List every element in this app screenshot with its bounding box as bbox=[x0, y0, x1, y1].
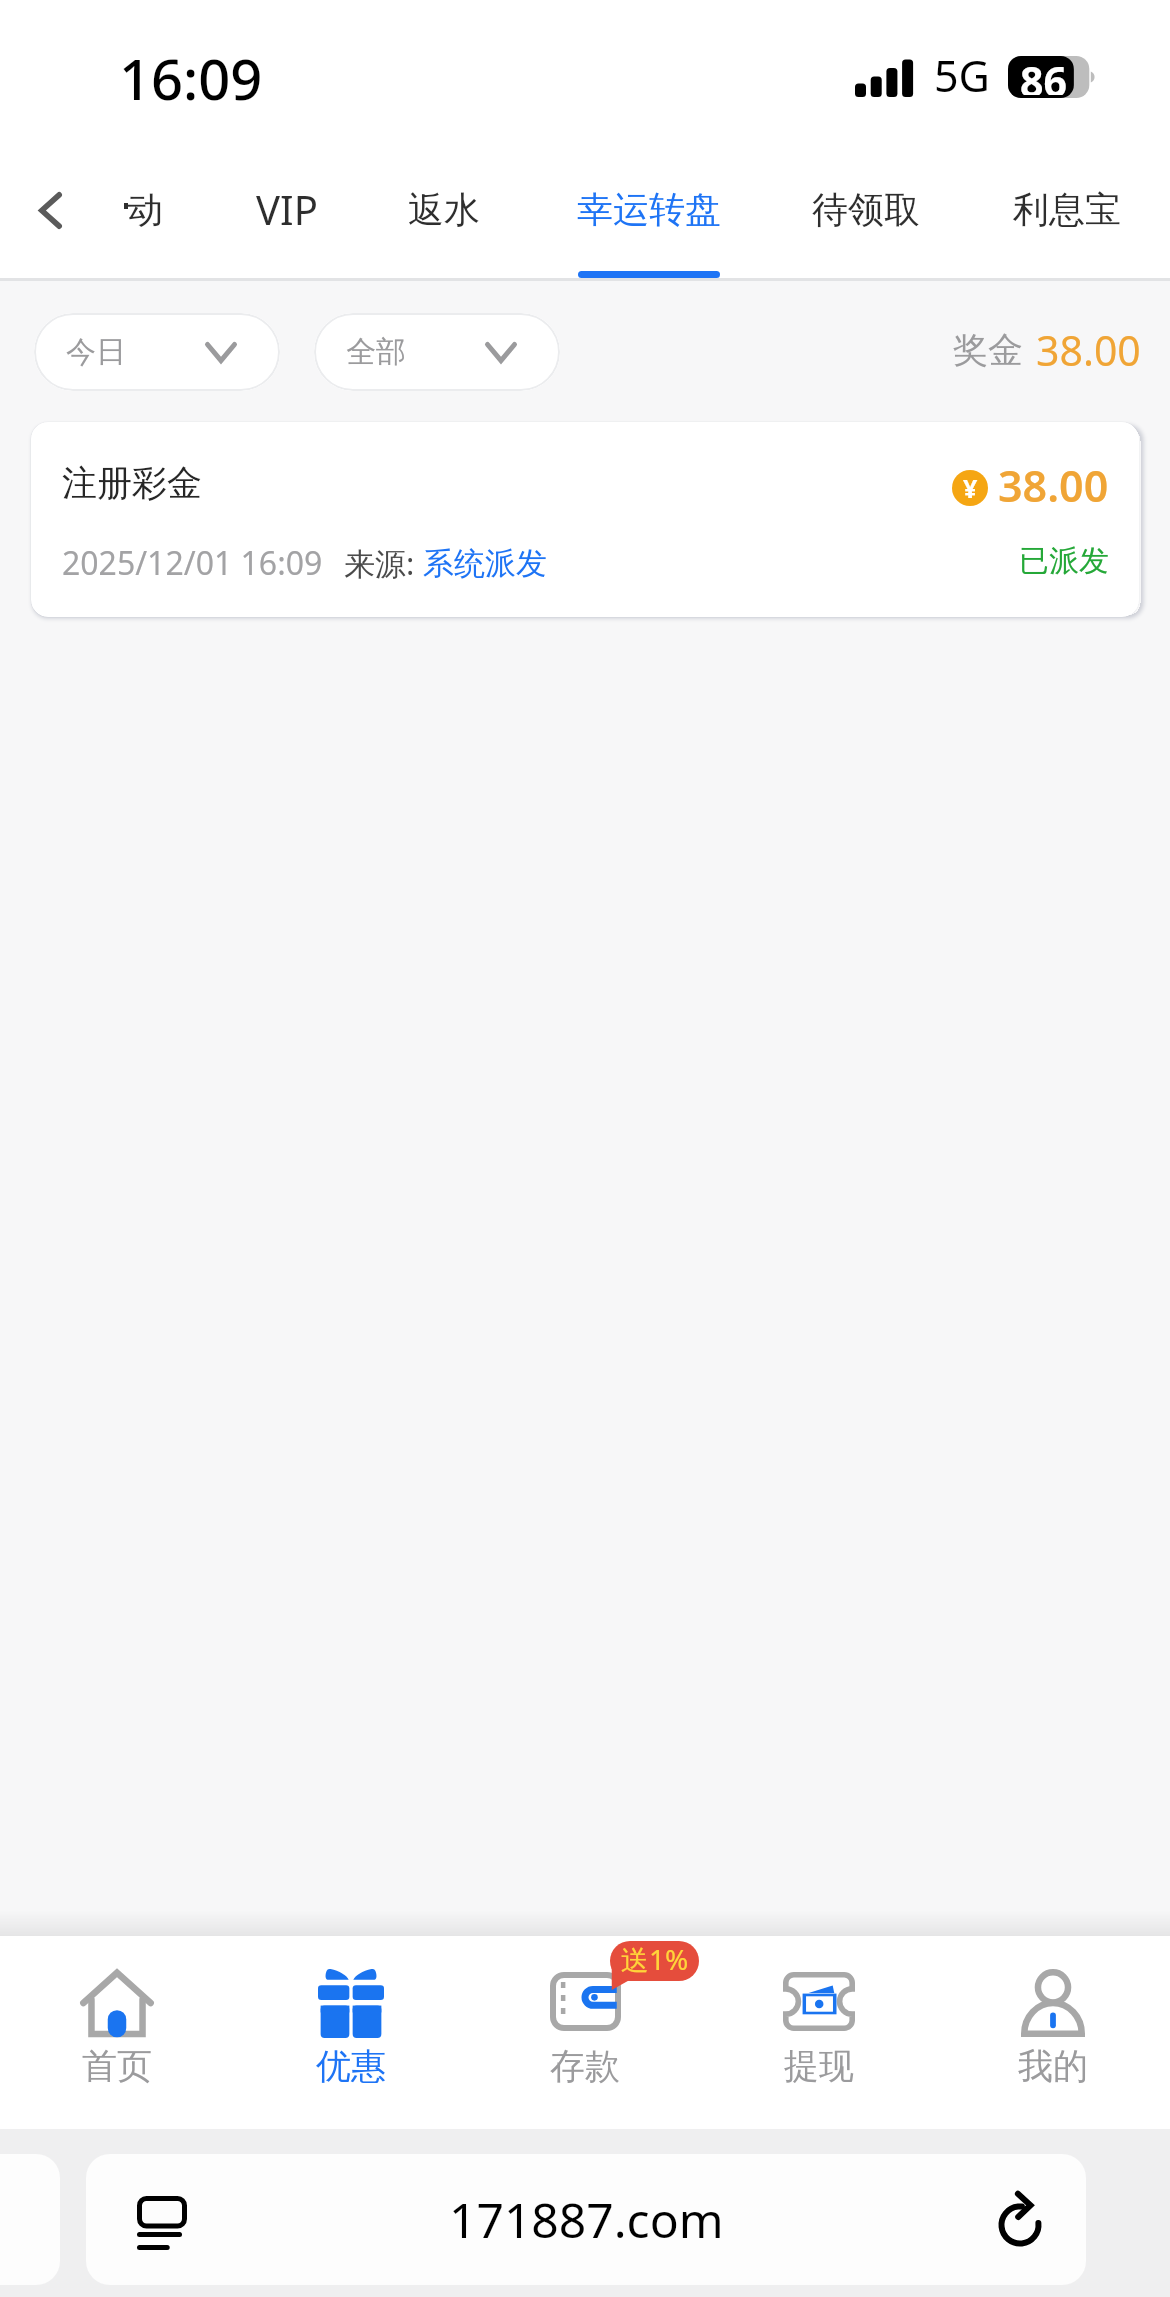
button[interactable]: 今日 bbox=[34, 313, 280, 391]
staticText: ¥ bbox=[963, 471, 978, 505]
staticText: 38.00 bbox=[1036, 322, 1141, 378]
button[interactable]: 待领取 bbox=[807, 150, 925, 268]
staticText: 奖金 bbox=[953, 328, 1023, 372]
button[interactable]: Reader view bbox=[86, 2154, 1086, 2285]
staticText: 今日 bbox=[66, 333, 126, 371]
button[interactable]: 动 bbox=[116, 150, 174, 268]
button[interactable]: Reader view bbox=[117, 2176, 202, 2261]
staticText: 全部 bbox=[346, 333, 406, 371]
staticText: 待领取 bbox=[812, 187, 920, 232]
button[interactable]: 送1% bbox=[468, 1936, 702, 2129]
staticText: 幸运转盘 bbox=[577, 187, 721, 232]
staticText: 171887.com bbox=[449, 2187, 724, 2252]
staticText: 利息宝 bbox=[1013, 187, 1121, 232]
staticText: 86 bbox=[1020, 53, 1067, 95]
staticText: 动 bbox=[127, 187, 163, 232]
button[interactable]: 提现 bbox=[702, 1936, 936, 2129]
button[interactable]: 优惠 bbox=[234, 1936, 468, 2129]
button[interactable]: 返水 bbox=[400, 150, 488, 268]
staticText: 已派发 bbox=[1019, 542, 1109, 580]
staticText: VIP bbox=[256, 182, 318, 236]
staticText: 16:09 bbox=[119, 40, 263, 116]
staticText: 38.00 bbox=[998, 456, 1109, 515]
button[interactable]: 全部 bbox=[314, 313, 560, 391]
staticText: 返水 bbox=[408, 187, 480, 232]
button[interactable]: 注册彩金 bbox=[31, 422, 1139, 617]
button[interactable]: 幸运转盘 bbox=[573, 150, 725, 268]
staticText: 2025/12/01 16:09 bbox=[62, 541, 323, 585]
staticText: 来源: bbox=[344, 542, 423, 584]
staticText: 注册彩金 bbox=[62, 461, 202, 505]
button[interactable]: 我的 bbox=[936, 1936, 1170, 2129]
button[interactable]: 首页 bbox=[0, 1936, 234, 2129]
staticText: 优惠 bbox=[316, 2044, 386, 2088]
staticText: 首页 bbox=[82, 2044, 152, 2088]
staticText: 送1% bbox=[621, 1940, 689, 1978]
button[interactable]: VIP bbox=[247, 150, 327, 268]
staticText: 系统派发 bbox=[423, 544, 547, 583]
staticText: 5G bbox=[934, 46, 990, 105]
button[interactable]: Reload page bbox=[990, 2195, 1050, 2255]
button[interactable]: 利息宝 bbox=[1008, 150, 1126, 268]
staticText: 我的 bbox=[1018, 2044, 1088, 2088]
staticText: 存款 bbox=[550, 2044, 620, 2088]
staticText: 提现 bbox=[784, 2044, 854, 2088]
button[interactable]: Back bbox=[4, 164, 96, 256]
